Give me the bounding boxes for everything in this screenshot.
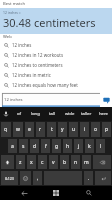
button[interactable]: Backspace: [93, 155, 111, 169]
staticText: p: [105, 126, 109, 133]
staticText: t: [51, 126, 53, 133]
staticText: g: [55, 143, 59, 150]
button[interactable]: taller: [78, 107, 95, 121]
staticText: h: [66, 143, 70, 150]
staticText: of: [17, 111, 21, 117]
staticText: wide: [65, 111, 75, 117]
button[interactable]: k: [85, 139, 94, 153]
staticText: o: [94, 126, 98, 133]
staticText: 12 inches to centimeters: [12, 62, 63, 68]
staticText: 12 inches in 12 workouts: [12, 52, 64, 58]
staticText: i: [84, 126, 86, 133]
button[interactable]: f: [41, 139, 50, 153]
staticText: u: [72, 126, 76, 133]
staticText: y: [61, 126, 64, 133]
button[interactable]: i: [80, 122, 89, 137]
button[interactable]: e: [25, 122, 34, 137]
button[interactable]: b: [60, 155, 69, 169]
staticText: v: [52, 159, 55, 166]
button[interactable]: q: [1, 122, 11, 137]
staticText: n: [74, 159, 78, 166]
staticText: .: [88, 175, 90, 182]
button[interactable]: g: [52, 139, 61, 153]
button[interactable]: d: [30, 139, 39, 153]
staticText: q: [4, 126, 8, 133]
button[interactable]: n: [71, 155, 80, 169]
button[interactable]: Shift: [1, 155, 14, 169]
staticText: tall: [49, 111, 56, 117]
staticText: here: [99, 111, 108, 117]
button[interactable]: Voice input: [0, 107, 11, 121]
button[interactable]: .: [84, 171, 93, 185]
button[interactable]: w: [13, 122, 23, 137]
staticText: &123: [5, 176, 14, 181]
staticText: j: [78, 143, 80, 150]
button[interactable]: tall: [44, 107, 61, 121]
button[interactable]: here: [95, 107, 112, 121]
button[interactable]: y: [58, 122, 67, 137]
staticText: w: [16, 126, 20, 133]
staticText: x: [30, 159, 33, 166]
button[interactable]: long: [27, 107, 44, 121]
button[interactable]: Search: [80, 186, 98, 200]
button[interactable]: 12 inches to centimeters: [0, 60, 112, 70]
staticText: long: [31, 111, 40, 117]
staticText: z: [19, 159, 22, 166]
staticText: Best match: [3, 1, 26, 7]
button[interactable]: j: [74, 139, 83, 153]
staticText: s: [22, 143, 25, 150]
button[interactable]: x: [27, 155, 36, 169]
button[interactable]: Search with camera: [100, 93, 112, 107]
staticText: 12 inches in metric: [12, 72, 51, 78]
button[interactable]: a: [8, 139, 17, 153]
button[interactable]: 12 inches: [0, 40, 112, 50]
button[interactable]: o: [91, 122, 100, 137]
button[interactable]: r: [36, 122, 45, 137]
button[interactable]: wide: [61, 107, 78, 121]
staticText: r: [39, 126, 42, 133]
button[interactable]: Enter: [95, 171, 111, 185]
button[interactable]: ,: [33, 171, 42, 185]
button[interactable]: m: [82, 155, 91, 169]
staticText: c: [41, 159, 44, 166]
button[interactable]: u: [69, 122, 78, 137]
button[interactable]: 12 inches in 12 workouts: [0, 50, 112, 60]
button[interactable]: h: [63, 139, 72, 153]
staticText: 12 inches equals how many feet: [12, 82, 78, 88]
button[interactable]: l: [96, 139, 105, 153]
staticText: 12 inches: [4, 97, 23, 103]
button[interactable]: of: [11, 107, 27, 121]
button[interactable]: &123: [1, 171, 18, 185]
staticText: 12 inches =: [3, 10, 21, 15]
button[interactable]: 12 inches =: [0, 8, 112, 34]
button[interactable]: v: [49, 155, 58, 169]
staticText: d: [33, 143, 37, 150]
staticText: a: [11, 143, 14, 150]
staticText: Web: [3, 34, 12, 40]
staticText: k: [88, 143, 91, 150]
staticText: taller: [81, 111, 92, 117]
staticText: ,: [37, 175, 39, 182]
staticText: 12 inches: [12, 42, 32, 48]
staticText: m: [84, 159, 89, 166]
button[interactable]: t: [47, 122, 56, 137]
button[interactable]: z: [16, 155, 25, 169]
button[interactable]: Emoji: [20, 171, 31, 185]
staticText: 30.48 centimeters: [3, 15, 96, 30]
button[interactable]: 12 inches equals how many feet: [0, 80, 112, 90]
button[interactable]: p: [102, 122, 111, 137]
staticText: b: [63, 159, 67, 166]
staticText: e: [28, 126, 31, 133]
button[interactable]: s: [19, 139, 28, 153]
button[interactable]: 12 inches in metric: [0, 70, 112, 80]
staticText: l: [100, 143, 102, 150]
button[interactable]: 12 inches: [2, 93, 100, 107]
staticText: f: [45, 143, 47, 150]
button[interactable]: Back: [15, 186, 33, 200]
button[interactable]: c: [38, 155, 47, 169]
button[interactable]: Home: [47, 186, 65, 200]
